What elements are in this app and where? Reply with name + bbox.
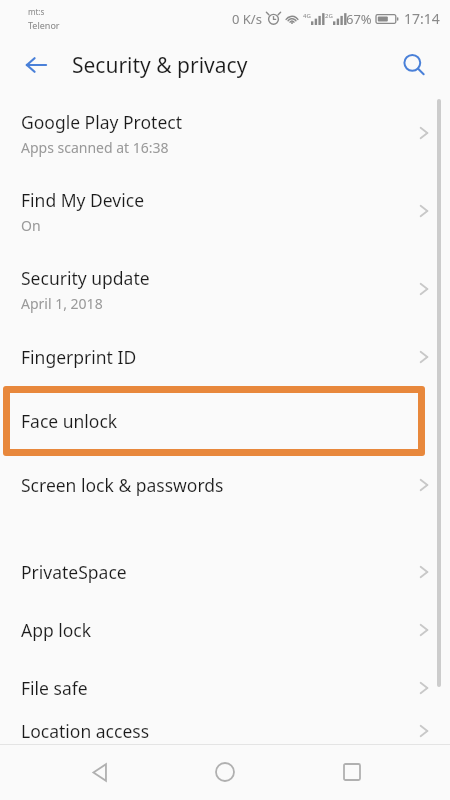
button[interactable]: Fingerprint ID <box>0 328 450 386</box>
staticText: 67% <box>346 10 372 28</box>
button[interactable]: Google Play Protect <box>0 94 450 172</box>
staticText: 2G <box>325 12 333 20</box>
staticText: Security & privacy <box>72 51 248 80</box>
staticText: On <box>21 216 41 235</box>
staticText: Security update <box>21 266 150 290</box>
staticText: Google Play Protect <box>21 110 182 134</box>
button[interactable]: Find My Device <box>0 172 450 250</box>
button[interactable]: Location access <box>0 717 450 744</box>
staticText: 4G <box>303 12 311 20</box>
button[interactable]: File safe <box>0 659 450 717</box>
staticText: App lock <box>21 618 418 642</box>
staticText: Telenor <box>28 19 60 31</box>
staticText: Fingerprint ID <box>21 345 418 369</box>
button[interactable]: Back <box>14 43 58 87</box>
staticText: PrivateSpace <box>21 560 418 584</box>
button[interactable]: PrivateSpace <box>0 543 450 601</box>
staticText: Find My Device <box>21 188 145 212</box>
staticText: April 1, 2018 <box>21 294 103 313</box>
button[interactable]: Face unlock <box>3 386 425 456</box>
staticText: mt:s <box>28 6 45 17</box>
staticText: Screen lock & passwords <box>21 473 418 497</box>
button[interactable]: Security update <box>0 250 450 328</box>
button[interactable]: Search <box>392 43 436 87</box>
staticText: Face unlock <box>21 409 419 433</box>
staticText: 0 K/s <box>232 10 262 28</box>
button[interactable]: Home <box>197 744 253 800</box>
button[interactable]: App lock <box>0 601 450 659</box>
button[interactable]: Screen lock & passwords <box>0 456 450 514</box>
button[interactable]: Recent apps <box>324 744 380 800</box>
staticText: File safe <box>21 676 418 700</box>
staticText: Location access <box>21 719 418 743</box>
staticText: 17:14 <box>404 9 440 28</box>
button[interactable]: Back <box>71 744 127 800</box>
staticText: Apps scanned at 16:38 <box>21 138 169 157</box>
